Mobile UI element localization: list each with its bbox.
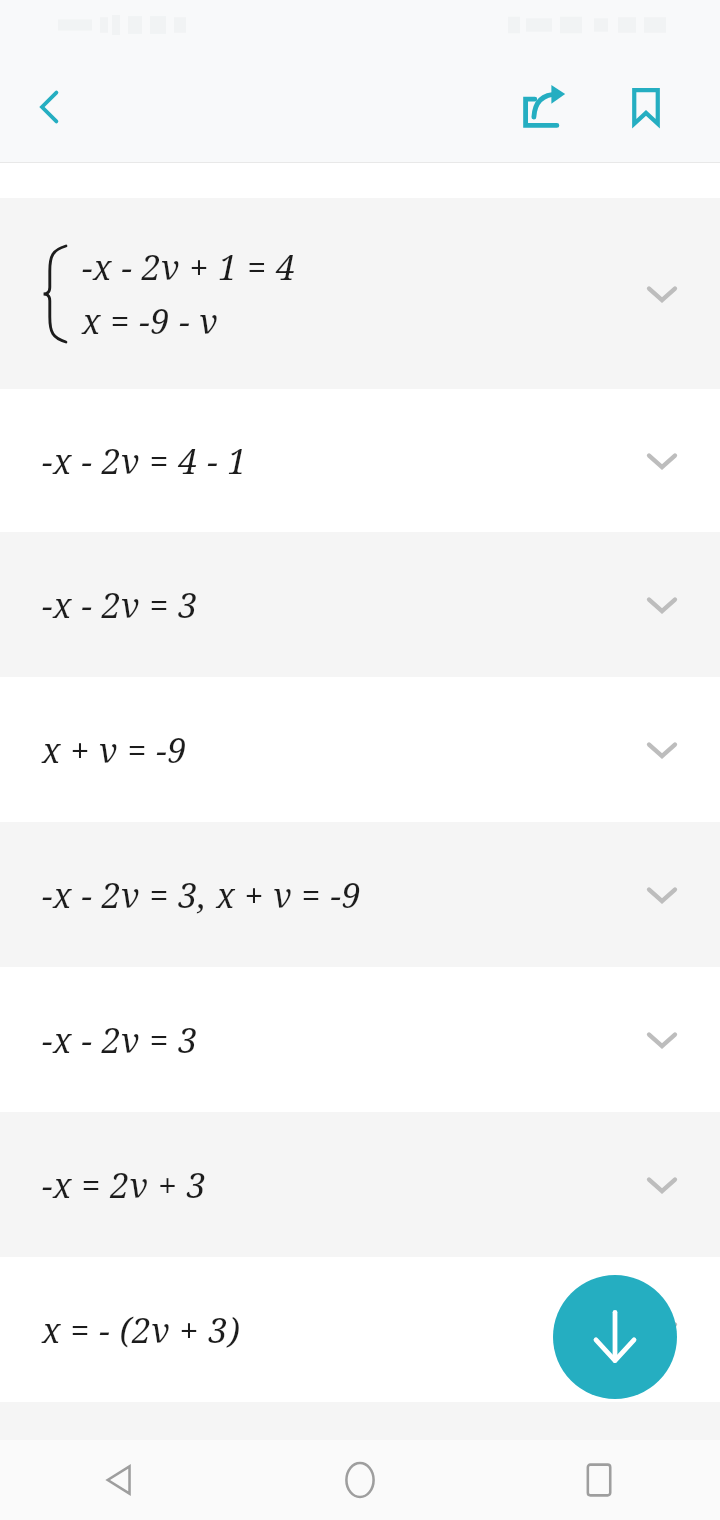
button[interactable]: −x − 2v + 1 = 4 xyxy=(0,198,720,389)
button[interactable]: x + v = −9 xyxy=(0,677,720,822)
staticText: −x − 2v = 3 xyxy=(42,582,198,628)
button[interactable]: Expand step xyxy=(626,714,698,786)
staticText: −x − 2v = 4 − 1 xyxy=(42,438,248,484)
button[interactable]: Back xyxy=(2,59,98,155)
staticText: −x − 2v = 3 xyxy=(42,1017,198,1063)
button[interactable]: −x − 2v = 3 xyxy=(0,967,720,1112)
button[interactable]: Bookmark xyxy=(598,59,694,155)
button[interactable]: Expand step xyxy=(626,1149,698,1221)
button[interactable]: −x = 2v + 3 xyxy=(0,1112,720,1257)
button[interactable]: x = − (2v + 3) xyxy=(0,1257,720,1402)
button[interactable]: −x − 2v = 4 − 1 xyxy=(0,389,720,532)
button[interactable]: Expand step xyxy=(626,859,698,931)
button[interactable]: Home xyxy=(240,1440,480,1520)
staticText: x = − (2v + 3) xyxy=(42,1307,241,1353)
button[interactable]: Expand step xyxy=(626,1004,698,1076)
button[interactable]: Recent apps xyxy=(480,1440,720,1520)
button[interactable]: Expand step xyxy=(626,1294,698,1366)
button[interactable]: Share xyxy=(496,59,592,155)
staticText: x + v = −9 xyxy=(42,727,187,773)
button[interactable]: Back xyxy=(0,1440,240,1520)
button[interactable]: Expand step xyxy=(626,569,698,641)
staticText: x = −9 − v xyxy=(82,298,219,344)
button[interactable]: Scroll to bottom xyxy=(553,1275,677,1399)
button[interactable]: Expand step xyxy=(626,258,698,330)
button[interactable]: −x − 2v = 3, x + v = −9 xyxy=(0,822,720,967)
staticText: −x − 2v + 1 = 4 xyxy=(82,244,296,290)
staticText: −x − 2v = 3, x + v = −9 xyxy=(42,872,361,918)
button[interactable]: Expand step xyxy=(626,425,698,497)
staticText: −x = 2v + 3 xyxy=(42,1162,207,1208)
button[interactable]: −x − 2v = 3 xyxy=(0,532,720,677)
